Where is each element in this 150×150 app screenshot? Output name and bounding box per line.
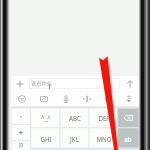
button[interactable]: ABC — [60, 108, 89, 128]
button[interactable]: Plus — [11, 125, 31, 141]
button[interactable]: ^_^ — [31, 108, 60, 128]
button[interactable]: Input method — [11, 91, 33, 106]
button[interactable]: Emoji — [33, 91, 55, 106]
staticText: ^_^ — [41, 114, 51, 122]
staticText: GHI — [40, 135, 52, 143]
button[interactable]: 符 — [11, 141, 31, 150]
button[interactable]: Send — [120, 76, 139, 91]
button[interactable]: Add attachment — [11, 76, 29, 91]
staticText: 符 — [18, 142, 24, 149]
button[interactable]: JKL — [60, 128, 89, 149]
button[interactable]: Comma — [11, 108, 31, 125]
button[interactable]: Voice input — [55, 91, 76, 106]
button[interactable]: Backspace — [117, 108, 139, 128]
button[interactable]: GHI — [31, 128, 60, 149]
staticText: MNO — [96, 135, 112, 143]
button[interactable]: Settings — [97, 91, 118, 106]
button[interactable]: DEF — [89, 108, 118, 128]
button[interactable]: MNO — [89, 128, 118, 149]
button[interactable]: 说点什么 — [29, 78, 120, 89]
staticText: DEF — [98, 114, 110, 122]
button[interactable]: ab — [117, 128, 139, 149]
button[interactable]: Hide keyboard — [118, 91, 139, 106]
staticText: ABC — [69, 114, 81, 122]
button[interactable]: Move cursor — [76, 91, 97, 106]
staticText: ab — [124, 135, 132, 143]
staticText: 说点什么 — [31, 80, 52, 87]
staticText: JKL — [70, 135, 79, 143]
